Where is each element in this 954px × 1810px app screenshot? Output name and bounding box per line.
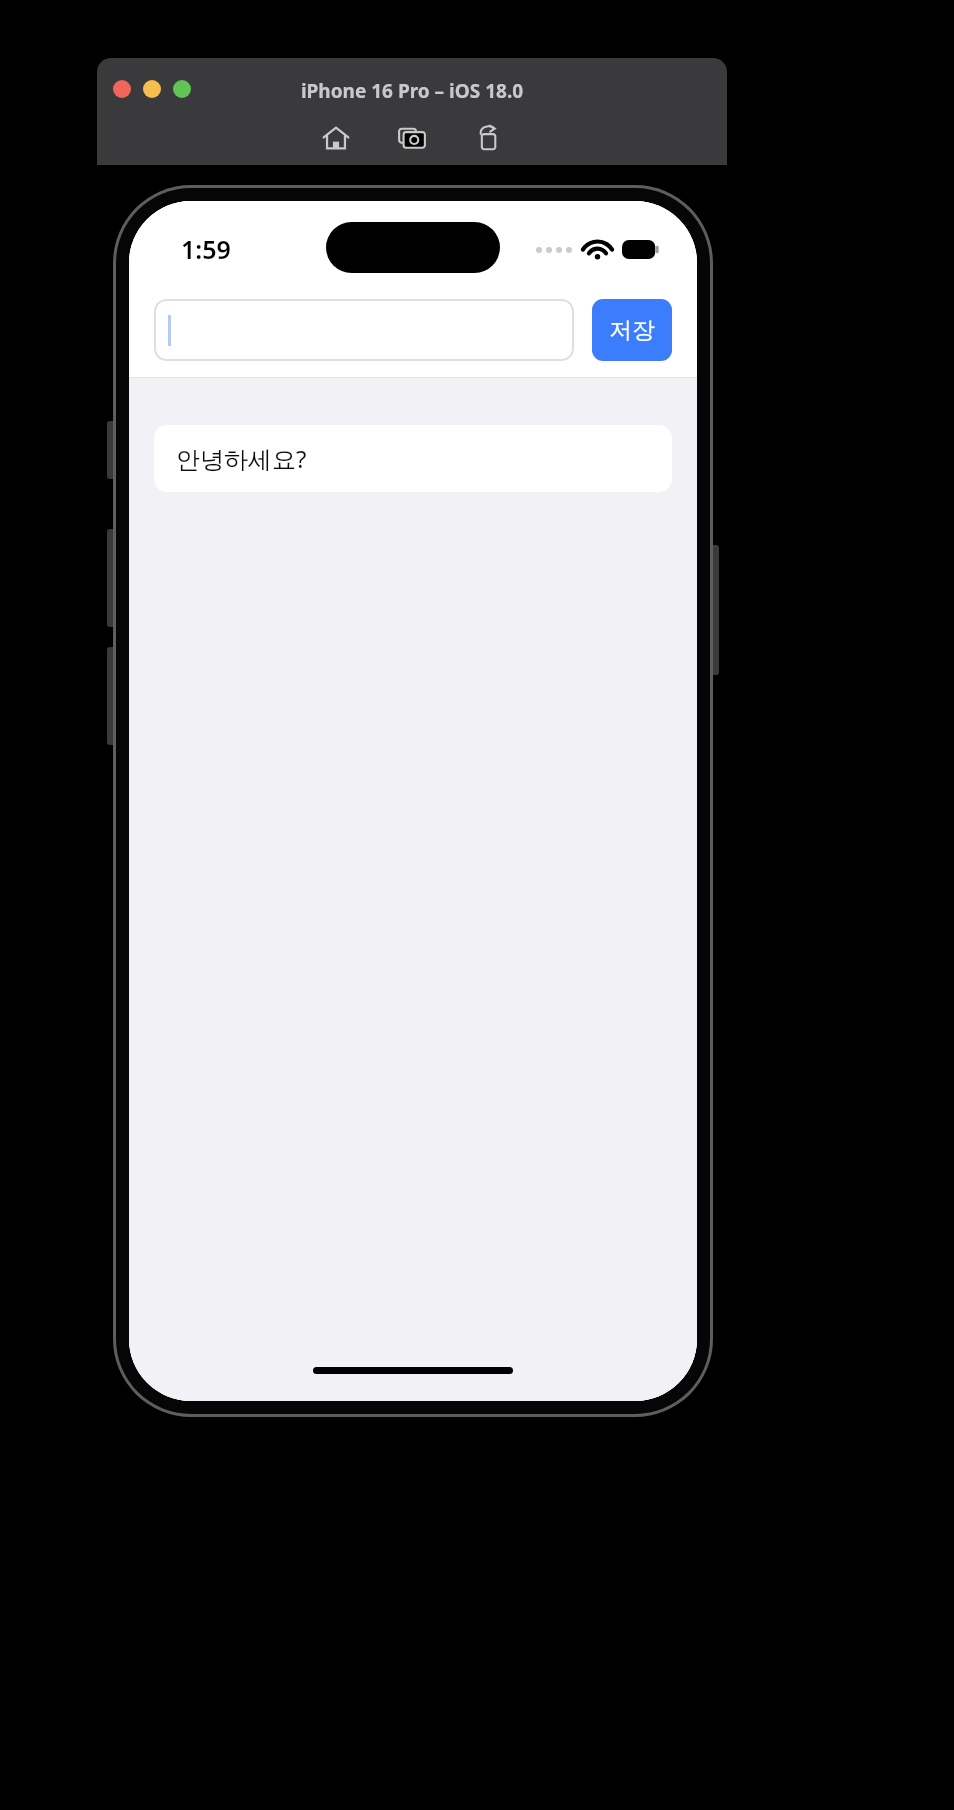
button[interactable] <box>154 299 574 361</box>
button[interactable]: 안녕하세요? <box>154 425 672 492</box>
button[interactable]: Screenshot <box>389 115 435 161</box>
staticText: 저장 <box>609 316 655 345</box>
button[interactable]: Home <box>313 115 359 161</box>
staticText: 안녕하세요? <box>176 442 307 475</box>
button[interactable]: Close <box>113 80 131 98</box>
staticText: 1:59 <box>181 232 231 266</box>
staticText: iPhone 16 Pro – iOS 18.0 <box>97 78 727 104</box>
button[interactable]: Zoom <box>173 80 191 98</box>
button[interactable]: 저장 <box>592 299 672 361</box>
button[interactable]: Rotate <box>465 115 511 161</box>
button[interactable]: Minimize <box>143 80 161 98</box>
